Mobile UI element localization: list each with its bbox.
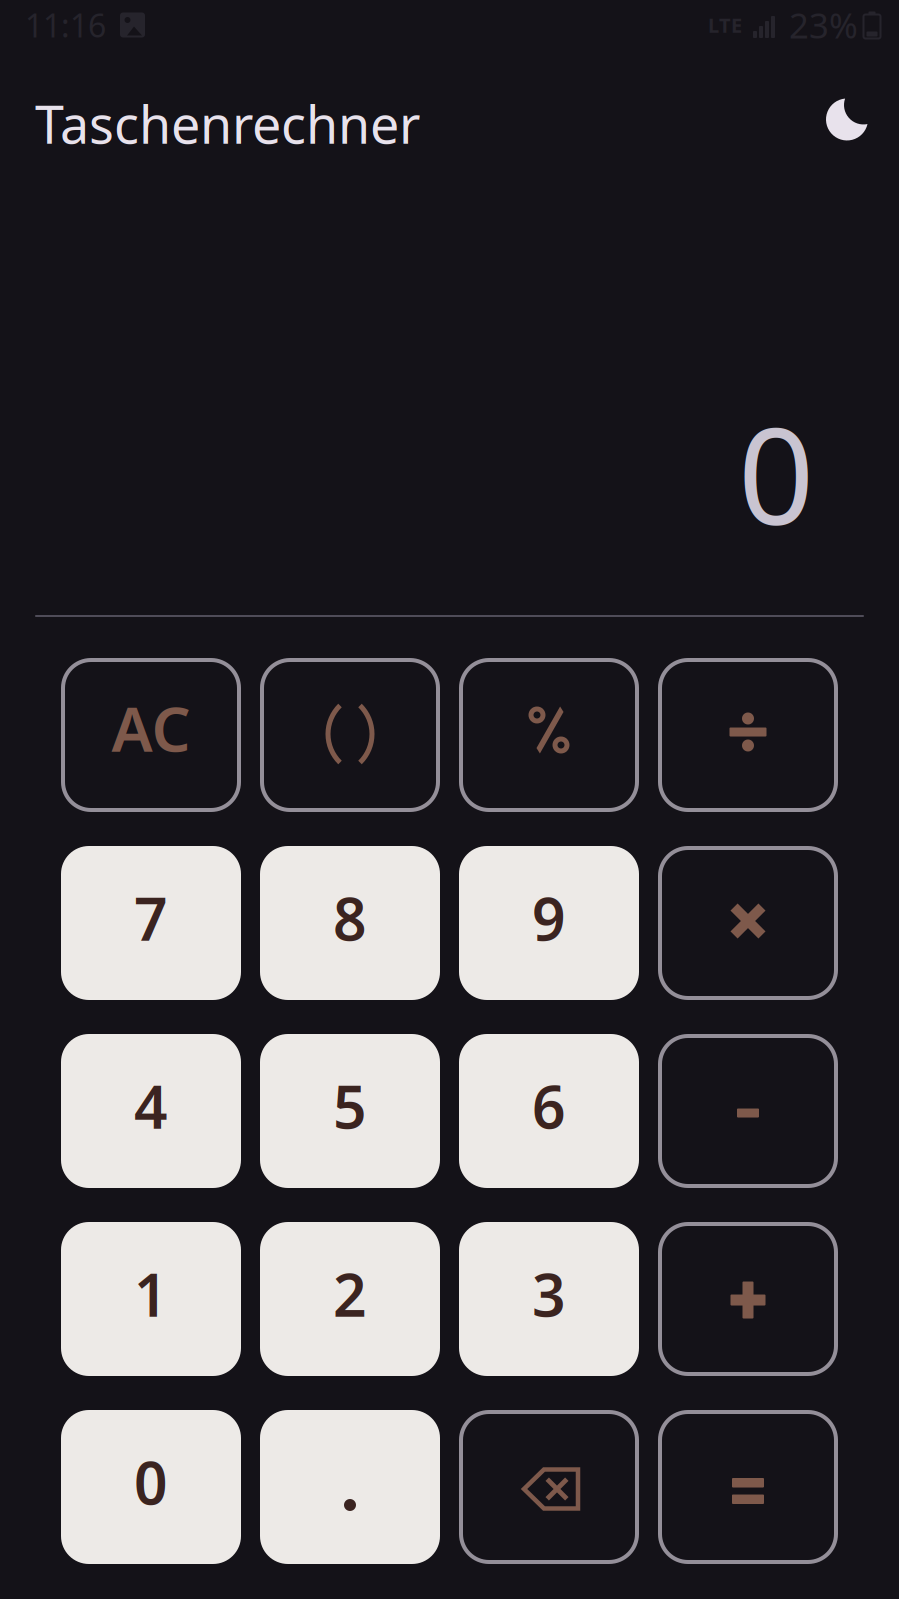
staticText: 8 — [333, 879, 367, 957]
button[interactable]: 5 — [260, 1034, 440, 1188]
button[interactable]: 8 — [260, 846, 440, 1000]
staticText: 4 — [134, 1067, 168, 1145]
button[interactable]: 9 — [459, 846, 639, 1000]
button[interactable]: Dark mode — [826, 100, 872, 146]
button[interactable]: Minus — [658, 1034, 838, 1188]
staticText: 3 — [532, 1255, 566, 1333]
button[interactable]: 7 — [61, 846, 241, 1000]
staticText: 0 — [738, 384, 814, 562]
staticText: LTE — [708, 12, 742, 38]
staticText: 6 — [532, 1067, 566, 1145]
staticText: 5 — [333, 1067, 367, 1145]
staticText: Taschenrechner — [35, 89, 420, 158]
button[interactable]: 6 — [459, 1034, 639, 1188]
staticText: 2 — [333, 1255, 367, 1333]
staticText: 11:16 — [25, 4, 106, 46]
staticText: 0 — [134, 1443, 168, 1521]
staticText: 1 — [134, 1255, 168, 1333]
button[interactable]: Plus — [658, 1222, 838, 1376]
staticText: 23% — [789, 2, 858, 48]
button[interactable]: 1 — [61, 1222, 241, 1376]
button[interactable]: Divide — [658, 658, 838, 812]
button[interactable]: Multiply — [658, 846, 838, 1000]
button[interactable]: AC — [61, 658, 241, 812]
button[interactable]: Decimal point — [260, 1410, 440, 1564]
button[interactable]: Equals — [658, 1410, 838, 1564]
button[interactable]: Percent — [459, 658, 639, 812]
staticText: AC — [111, 687, 190, 769]
button[interactable]: 2 — [260, 1222, 440, 1376]
staticText: 9 — [532, 879, 566, 957]
button[interactable]: 0 — [61, 1410, 241, 1564]
staticText: 7 — [134, 879, 168, 957]
button[interactable]: 4 — [61, 1034, 241, 1188]
button[interactable]: Delete — [459, 1410, 639, 1564]
button[interactable]: 3 — [459, 1222, 639, 1376]
button[interactable]: Parentheses — [260, 658, 440, 812]
